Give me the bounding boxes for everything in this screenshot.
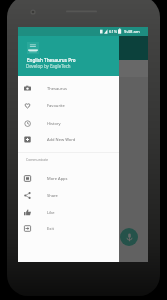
staticText: History (47, 121, 61, 127)
staticText: Develop by EagleTech (26, 63, 71, 69)
button[interactable]: Thesaurus (18, 80, 119, 97)
staticText: Share (47, 193, 58, 199)
staticText: Favourite (47, 103, 65, 109)
button[interactable]: Exit (18, 220, 119, 237)
staticText: Communicate (26, 157, 49, 162)
button[interactable]: Voice search (120, 228, 138, 246)
button[interactable]: Add New Word (18, 131, 119, 148)
button[interactable]: More Apps (18, 170, 119, 187)
staticText: 9:48 am (124, 29, 140, 35)
staticText: More Apps (47, 176, 68, 182)
button[interactable]: History (18, 115, 119, 132)
staticText: Thesaurus (47, 86, 67, 92)
button[interactable]: Like (18, 204, 119, 221)
button[interactable]: Favourite (18, 97, 119, 114)
staticText: Like (47, 210, 55, 216)
staticText: English Thesaurus Pro (27, 57, 76, 63)
staticText: Add New Word (47, 137, 76, 143)
staticText: 61% (109, 29, 118, 35)
button[interactable]: Share (18, 187, 119, 204)
staticText: Exit (47, 226, 54, 232)
